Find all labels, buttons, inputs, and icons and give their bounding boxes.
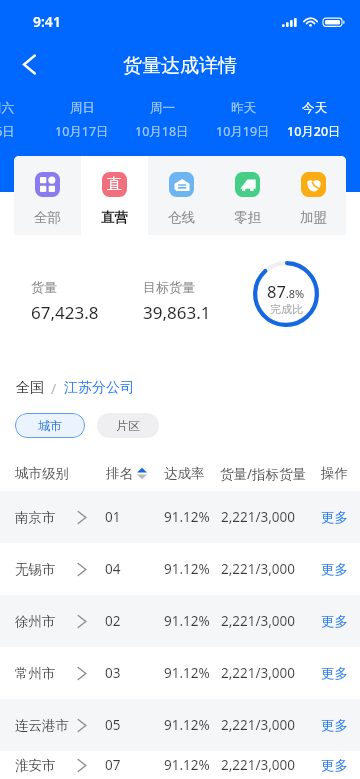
button[interactable]: 徐州市 (0, 595, 360, 647)
staticText: 徐州市 (15, 613, 56, 630)
staticText: 货量达成详情 (123, 54, 237, 78)
button[interactable]: 仓线 (148, 156, 214, 235)
staticText: 67,423.8 (31, 301, 99, 324)
staticText: 2,221/3,000 (221, 664, 296, 682)
staticText: 片区 (116, 418, 140, 433)
staticText: 周一 (150, 100, 175, 116)
staticText: 2,221/3,000 (221, 716, 296, 734)
staticText: 2,221/3,000 (221, 560, 296, 578)
button[interactable]: 今天 (274, 86, 354, 148)
staticText: 2,221/3,000 (221, 508, 296, 526)
staticText: 10月18日 (135, 123, 189, 140)
button[interactable]: 无锡市 (0, 543, 360, 595)
staticText: 02 (105, 612, 121, 630)
staticText: 16日 (0, 123, 15, 140)
staticText: 91.12% (164, 612, 210, 630)
staticText: 01 (105, 508, 121, 526)
staticText: 05 (105, 716, 121, 734)
staticText: 完成比 (270, 302, 303, 316)
staticText: 全部 (34, 209, 61, 226)
button[interactable]: 南京市 (0, 491, 360, 543)
button[interactable]: 零担 (214, 156, 280, 235)
staticText: 今天 (302, 100, 327, 116)
staticText: 达成率 (164, 465, 205, 482)
button[interactable]: 周六 (0, 86, 41, 148)
staticText: 直营 (101, 209, 128, 226)
button[interactable]: 周一 (122, 86, 202, 148)
button[interactable]: 更多 (321, 561, 348, 578)
staticText: 07 (105, 756, 121, 774)
staticText: 常州市 (15, 665, 56, 682)
staticText: / (51, 379, 57, 398)
staticText: 周日 (70, 100, 95, 116)
staticText: 10月20日 (287, 123, 341, 140)
button[interactable]: Back (10, 45, 48, 83)
staticText: 仓线 (168, 209, 195, 226)
staticText: 零担 (234, 209, 261, 226)
staticText: 昨天 (231, 100, 256, 116)
button[interactable]: 更多 (321, 757, 348, 774)
staticText: 2,221/3,000 (221, 756, 296, 774)
button[interactable]: 更多 (321, 613, 348, 630)
staticText: 91.12% (164, 560, 210, 578)
staticText: 操作 (321, 465, 348, 482)
button[interactable]: 连云港市 (0, 699, 360, 751)
staticText: 淮安市 (15, 757, 56, 774)
button[interactable]: 全国 (16, 379, 44, 397)
staticText: 无锡市 (15, 561, 56, 578)
button[interactable]: 淮安市 (0, 751, 360, 779)
button[interactable]: 城市 (15, 413, 85, 438)
staticText: 10月17日 (55, 123, 109, 140)
staticText: 91.12% (164, 508, 210, 526)
staticText: 04 (105, 560, 121, 578)
button[interactable]: 周日 (42, 86, 122, 148)
button[interactable]: 常州市 (0, 647, 360, 699)
staticText: 9:41 (33, 12, 61, 31)
button[interactable]: 直 (81, 156, 148, 235)
button[interactable]: 更多 (321, 665, 348, 682)
staticText: 南京市 (15, 509, 56, 526)
button[interactable]: 加盟 (280, 156, 346, 235)
button[interactable]: 江苏分公司 (64, 379, 134, 397)
staticText: 目标货量 (143, 279, 195, 295)
staticText: 货量/指标货量 (220, 465, 307, 483)
staticText: 03 (105, 664, 121, 682)
staticText: 2,221/3,000 (221, 612, 296, 630)
button[interactable]: 更多 (321, 509, 348, 526)
staticText: 91.12% (164, 716, 210, 734)
staticText: 排名 (106, 465, 133, 482)
button[interactable]: 全部 (14, 156, 81, 235)
staticText: 货量 (31, 279, 57, 295)
staticText: 10月19日 (216, 123, 270, 140)
staticText: 城市级别 (15, 465, 69, 482)
staticText: 39,863.1 (143, 301, 211, 324)
staticText: 87.8% (267, 280, 305, 302)
button[interactable]: 昨天 (203, 86, 283, 148)
staticText: 连云港市 (15, 717, 69, 734)
staticText: 91.12% (164, 756, 210, 774)
button[interactable]: 更多 (321, 717, 348, 734)
staticText: 周六 (0, 100, 14, 116)
staticText: 直 (107, 175, 122, 194)
button[interactable]: 片区 (97, 413, 159, 438)
staticText: 城市 (38, 418, 62, 433)
staticText: 加盟 (300, 209, 327, 226)
staticText: 91.12% (164, 664, 210, 682)
